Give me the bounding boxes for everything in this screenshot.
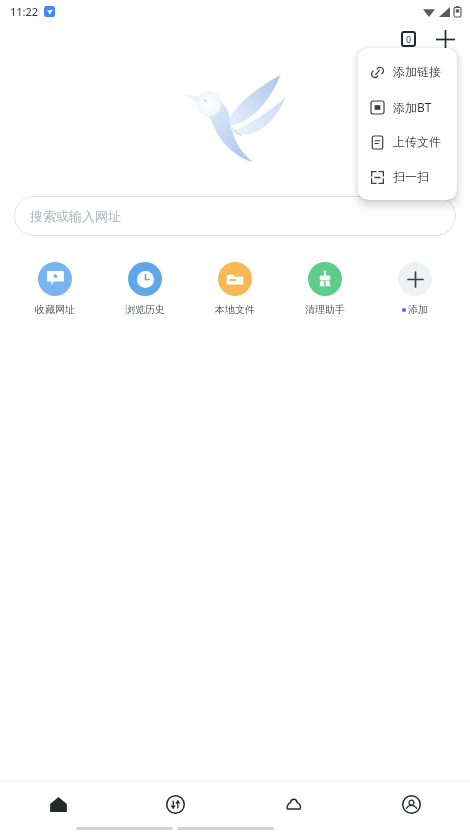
staticText: 0 xyxy=(406,33,412,45)
staticText: 添加BT xyxy=(393,99,432,115)
button[interactable]: 添加BT xyxy=(358,89,457,124)
staticText: 添加 xyxy=(408,303,428,316)
button[interactable]: 清理助手 xyxy=(280,260,370,318)
button[interactable]: New tab xyxy=(428,22,462,56)
button[interactable]: Downloads xyxy=(117,781,234,827)
button[interactable]: 浏览历史 xyxy=(100,260,190,318)
staticText: 扫一扫 xyxy=(393,169,429,184)
button[interactable]: 扫一扫 xyxy=(358,159,457,194)
button[interactable]: 添加链接 xyxy=(358,54,457,89)
staticText: 上传文件 xyxy=(393,134,441,149)
button[interactable]: 收藏网址 xyxy=(10,260,100,318)
button[interactable]: Home xyxy=(0,781,117,827)
staticText: 本地文件 xyxy=(215,303,255,316)
button[interactable]: 本地文件 xyxy=(190,260,280,318)
staticText: 浏览历史 xyxy=(125,303,165,316)
button[interactable]: Profile xyxy=(352,781,470,827)
button[interactable]: 添加 xyxy=(370,260,460,318)
button[interactable]: 上传文件 xyxy=(358,124,457,159)
button[interactable]: 搜索或输入网址 xyxy=(14,196,456,236)
staticText: 清理助手 xyxy=(305,303,345,316)
staticText: 收藏网址 xyxy=(35,303,75,316)
staticText: 添加链接 xyxy=(393,64,441,79)
button[interactable]: Cloud xyxy=(234,781,352,827)
staticText: 11:22 xyxy=(10,4,39,19)
staticText: 搜索或输入网址 xyxy=(30,208,121,224)
button[interactable]: Tabs xyxy=(392,23,424,55)
